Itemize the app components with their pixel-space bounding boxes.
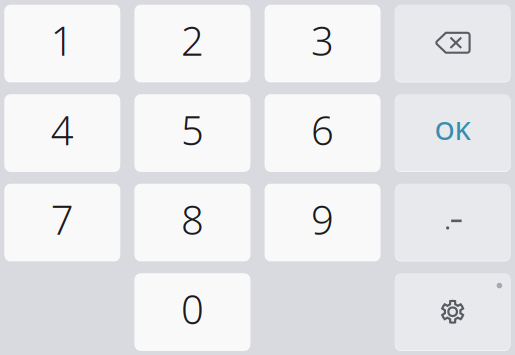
- button[interactable]: 1: [5, 5, 120, 82]
- staticText: 0: [181, 282, 204, 335]
- button[interactable]: 8: [135, 184, 250, 261]
- button[interactable]: Settings: [395, 273, 510, 350]
- button[interactable]: OK: [395, 94, 510, 171]
- button[interactable]: 9: [265, 184, 380, 261]
- button[interactable]: Period and dash: [395, 184, 510, 261]
- staticText: 2: [181, 14, 204, 67]
- staticText: 4: [51, 103, 74, 156]
- staticText: 5: [181, 103, 204, 156]
- button[interactable]: 7: [5, 184, 120, 261]
- button[interactable]: 0: [135, 273, 250, 350]
- staticText: 9: [311, 193, 334, 246]
- staticText: 8: [181, 193, 204, 246]
- staticText: OK: [435, 113, 471, 147]
- staticText: 6: [311, 103, 334, 156]
- button[interactable]: 6: [265, 94, 380, 171]
- staticText: 3: [311, 14, 334, 67]
- button[interactable]: 5: [135, 94, 250, 171]
- button[interactable]: 2: [135, 5, 250, 82]
- button[interactable]: Delete: [395, 5, 510, 82]
- button[interactable]: 4: [5, 94, 120, 171]
- staticText: 7: [51, 193, 74, 246]
- button[interactable]: 3: [265, 5, 380, 82]
- staticText: 1: [51, 14, 74, 67]
